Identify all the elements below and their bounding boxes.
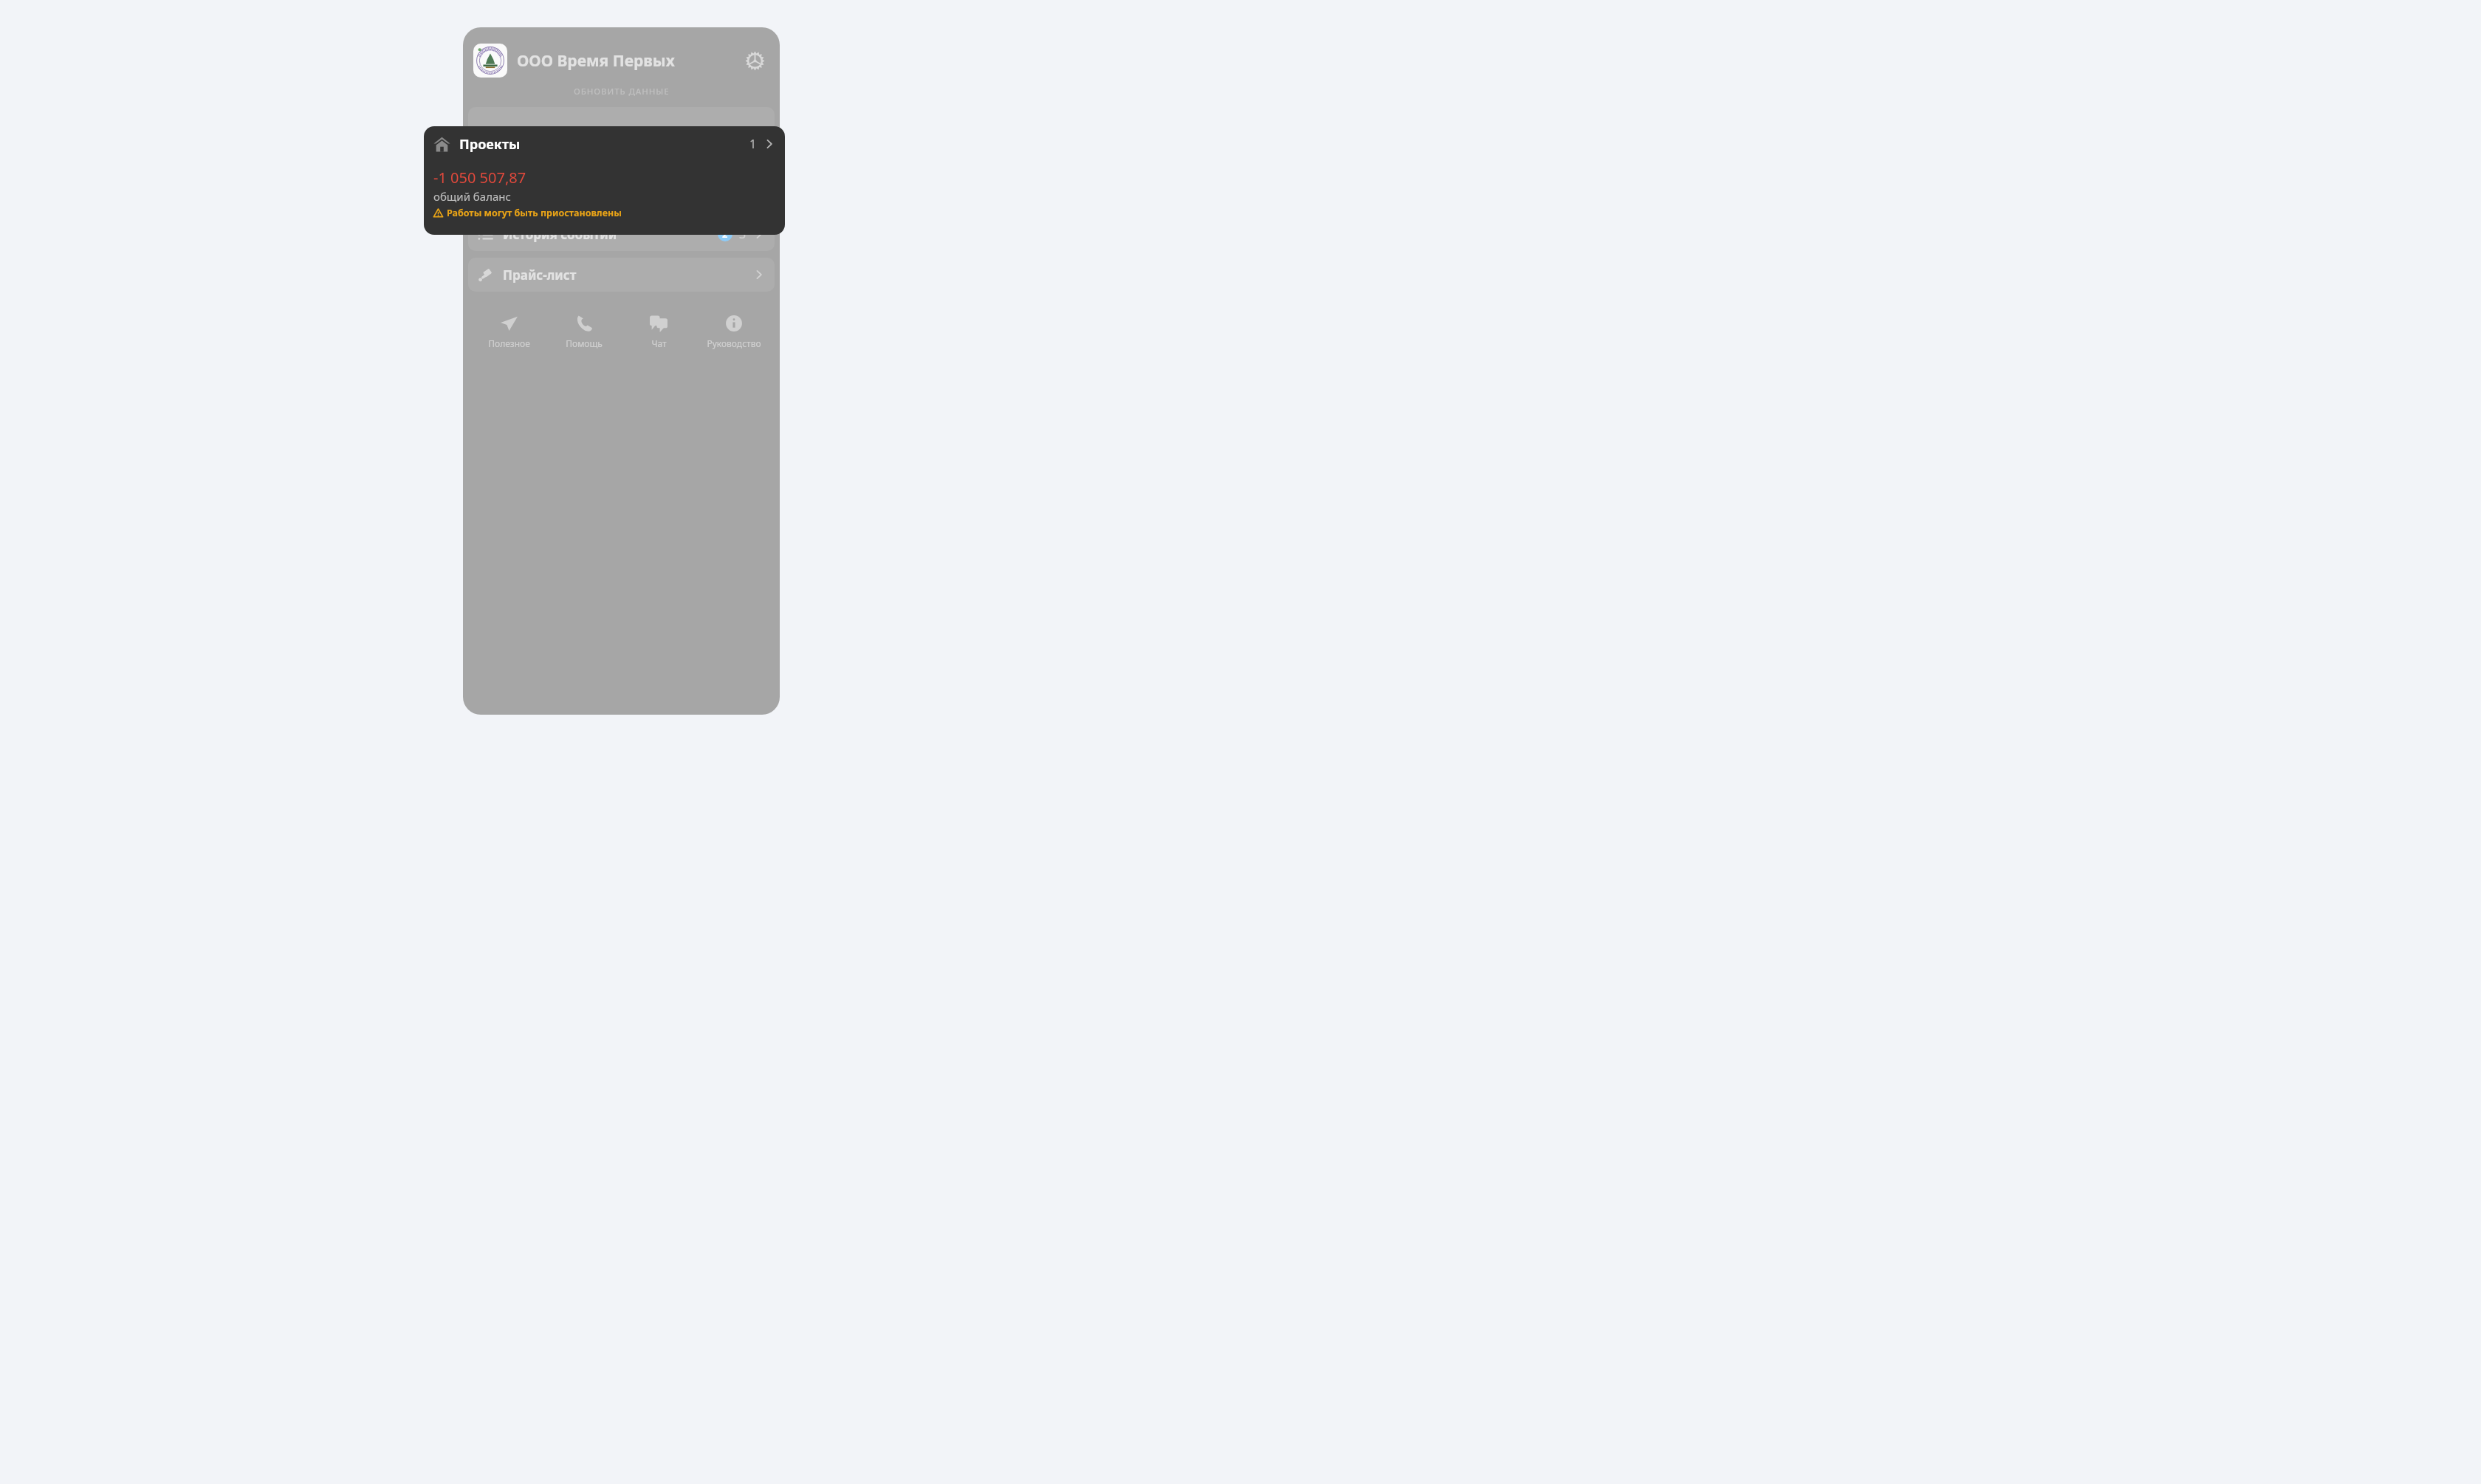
- staticText: ОБНОВИТЬ ДАННЫЕ: [574, 86, 670, 97]
- staticText: История событий: [503, 226, 617, 243]
- button[interactable]: Помощь: [549, 311, 620, 352]
- button[interactable]: Проекты: [424, 126, 785, 235]
- staticText: 2: [722, 227, 728, 241]
- staticText: 3: [739, 226, 747, 242]
- button[interactable]: Настройки: [740, 46, 769, 75]
- button[interactable]: История событий: [468, 217, 775, 251]
- button[interactable]: Руководство: [699, 311, 769, 352]
- staticText: Помощь: [566, 337, 603, 349]
- staticText: 1: [749, 136, 757, 152]
- staticText: Работы могут быть приостановлены: [447, 207, 622, 219]
- staticText: Прайс-лист: [503, 267, 577, 284]
- staticText: Полезное: [488, 337, 530, 349]
- button[interactable]: [468, 107, 775, 210]
- button[interactable]: Полезное: [473, 311, 544, 352]
- button[interactable]: Прайс-лист: [468, 258, 775, 292]
- staticText: Руководство: [707, 337, 761, 349]
- staticText: общий баланс: [433, 189, 511, 204]
- staticText: Чат: [651, 337, 667, 349]
- staticText: ООО Время Первых: [517, 50, 675, 72]
- staticText: Проекты: [459, 135, 521, 154]
- button[interactable]: Чат: [623, 311, 694, 352]
- button[interactable]: ОБНОВИТЬ ДАННЫЕ: [463, 82, 780, 101]
- staticText: -1 050 507,87: [433, 168, 526, 188]
